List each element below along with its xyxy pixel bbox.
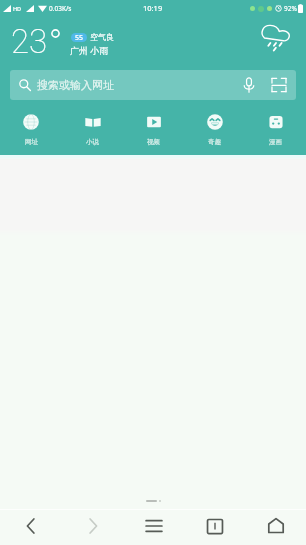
staticText: 23 xyxy=(11,22,48,61)
staticText: 视频 xyxy=(147,138,160,146)
button[interactable]: Scan QR code xyxy=(268,74,290,96)
staticText: 漫画 xyxy=(269,138,282,146)
staticText: 网址 xyxy=(25,138,38,146)
staticText: 空气良 xyxy=(90,32,114,42)
button[interactable]: 视频 xyxy=(123,112,184,148)
staticText: 搜索或输入网址 xyxy=(37,78,114,92)
button[interactable]: 小说 xyxy=(62,112,123,148)
button[interactable]: Home xyxy=(245,510,306,541)
button[interactable]: Tabs xyxy=(184,510,245,541)
button[interactable]: Voice search xyxy=(238,74,260,96)
staticText: 广州 小雨 xyxy=(70,44,109,56)
staticText: 小说 xyxy=(86,138,99,146)
button[interactable]: 网址 xyxy=(0,112,62,148)
staticText: 55 xyxy=(75,33,84,42)
button[interactable]: Forward xyxy=(62,510,123,541)
button[interactable]: Menu xyxy=(123,510,184,541)
staticText: 0.03K/s xyxy=(49,4,72,13)
button[interactable]: 漫画 xyxy=(245,112,306,148)
button[interactable]: 奇趣 xyxy=(184,112,245,148)
staticText: 10:19 xyxy=(143,3,163,13)
staticText: HD xyxy=(13,5,22,12)
staticText: 奇趣 xyxy=(208,138,221,146)
button[interactable]: 搜索或输入网址 xyxy=(10,70,296,100)
staticText: 92% xyxy=(284,4,297,13)
button[interactable]: Back xyxy=(0,510,62,541)
